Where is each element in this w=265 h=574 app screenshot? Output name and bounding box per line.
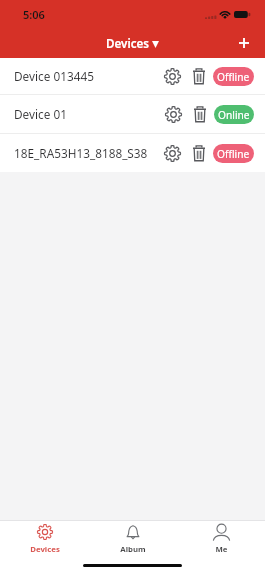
- button[interactable]: Add device: [231, 30, 257, 56]
- staticText: Devices: [30, 544, 60, 555]
- button[interactable]: Online: [214, 105, 254, 124]
- button[interactable]: Device 01: [0, 95, 265, 133]
- button[interactable]: Delete: [189, 103, 211, 125]
- button[interactable]: Settings: [161, 142, 183, 164]
- button[interactable]: 18E_RA53H13_8188_S38: [0, 134, 265, 172]
- button[interactable]: Offline: [213, 144, 254, 163]
- button[interactable]: Devices: [0, 521, 89, 556]
- button[interactable]: Me: [177, 521, 265, 556]
- staticText: Online: [218, 108, 250, 122]
- staticText: Device 01: [14, 106, 67, 122]
- staticText: Device 013445: [14, 68, 94, 84]
- button[interactable]: Settings: [162, 103, 184, 125]
- staticText: Album: [120, 544, 146, 555]
- staticText: Offline: [217, 70, 250, 84]
- button[interactable]: Album: [89, 521, 177, 556]
- button[interactable]: Device 013445: [0, 58, 265, 94]
- staticText: 5:06: [23, 7, 45, 22]
- button[interactable]: Offline: [213, 67, 254, 86]
- staticText: 18E_RA53H13_8188_S38: [14, 145, 148, 161]
- button[interactable]: Settings: [161, 65, 183, 87]
- staticText: Offline: [217, 147, 250, 161]
- staticText: Devices: [106, 36, 149, 52]
- button[interactable]: Delete: [188, 142, 210, 164]
- button[interactable]: Delete: [188, 65, 210, 87]
- staticText: Me: [215, 544, 228, 555]
